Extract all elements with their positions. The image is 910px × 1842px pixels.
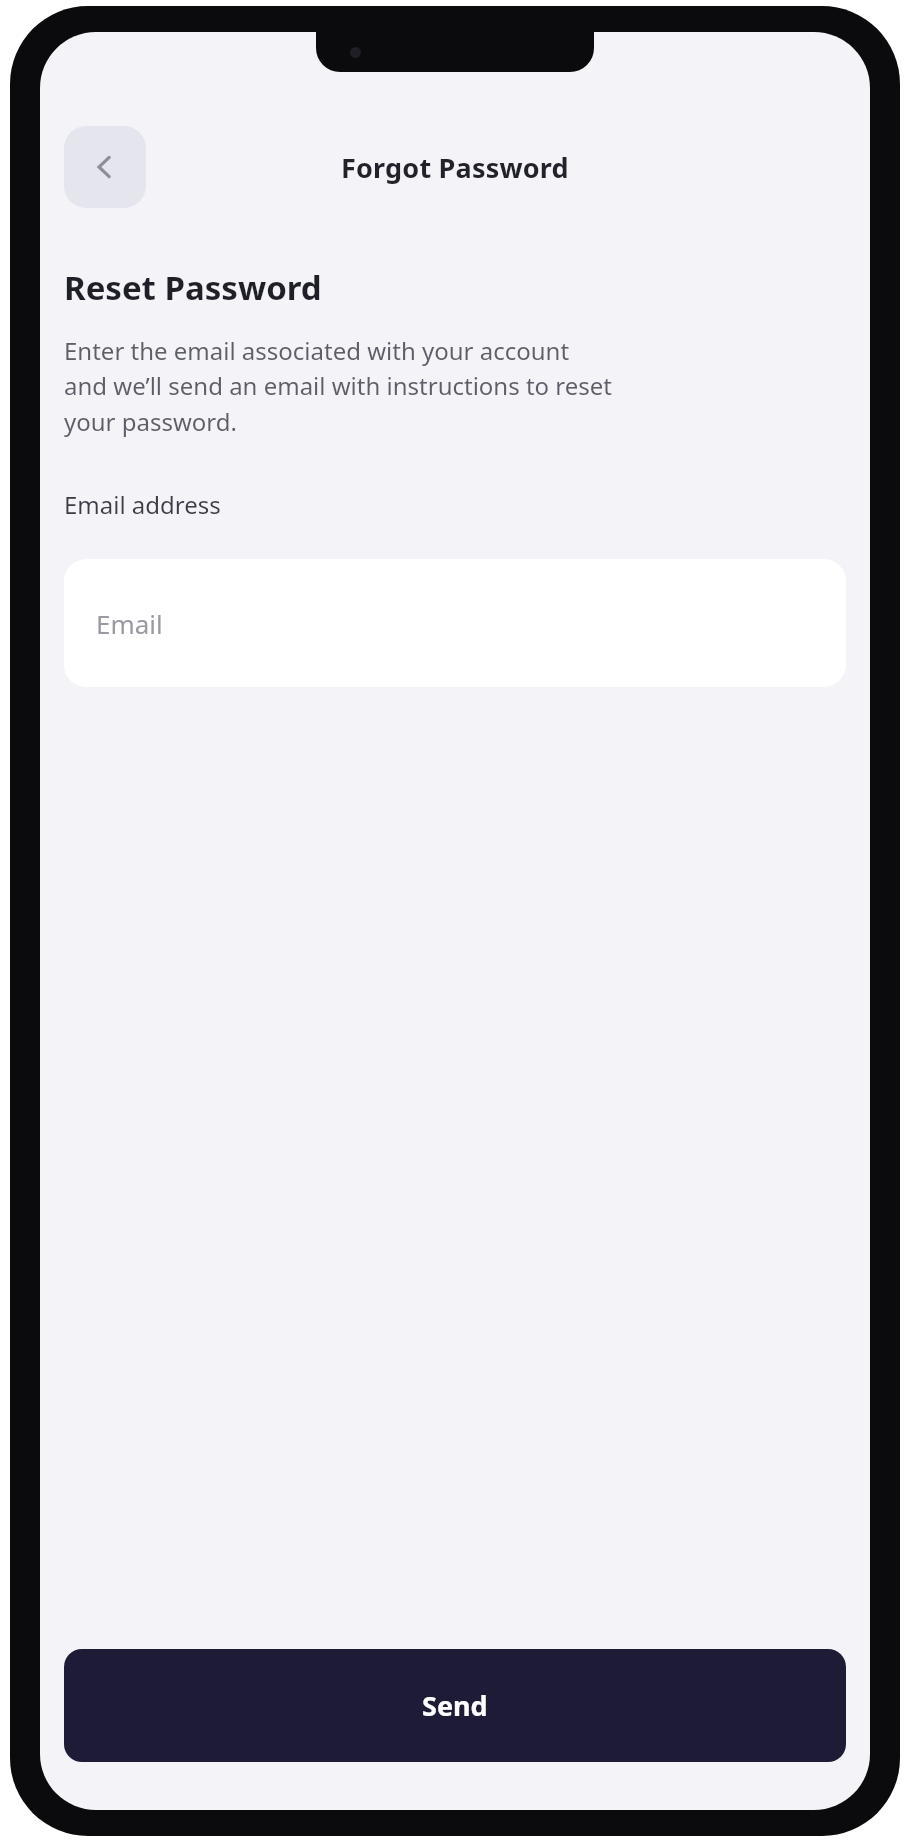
staticText: Reset Password xyxy=(64,265,322,310)
staticText: Send xyxy=(422,1687,488,1724)
staticText: Enter the email associated with your acc… xyxy=(64,334,613,438)
staticText: Email address xyxy=(64,488,221,521)
button[interactable]: Email xyxy=(64,559,846,687)
staticText: Email xyxy=(96,606,163,641)
staticText: Forgot Password xyxy=(341,149,569,186)
button[interactable]: Send xyxy=(64,1649,846,1762)
button[interactable]: Back xyxy=(64,126,146,208)
